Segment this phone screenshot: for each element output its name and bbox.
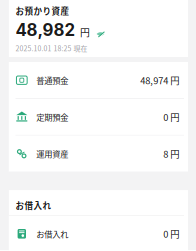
staticText: 0 円 [163, 110, 179, 124]
staticText: お預かり資産 [15, 5, 69, 17]
staticText: 円 [80, 25, 90, 39]
button[interactable]: 運用資産 [9, 136, 188, 172]
staticText: 定期預金 [36, 111, 68, 123]
button[interactable]: 普通預金 [9, 62, 188, 98]
staticText: 運用資産 [36, 148, 68, 160]
staticText: 48,974 円 [140, 73, 179, 87]
staticText: 8 円 [163, 147, 179, 160]
button[interactable]: 残高を隠す [90, 31, 104, 40]
staticText: 2025.10.01 18:25 現在 [15, 43, 87, 53]
staticText: 普通預金 [36, 74, 68, 86]
staticText: お借入れ [15, 199, 51, 211]
button[interactable]: 定期預金 [9, 99, 188, 135]
staticText: 0 円 [163, 227, 179, 240]
staticText: 48,982 [15, 20, 75, 40]
staticText: お借入れ [36, 228, 68, 240]
button[interactable]: お借入れ [9, 216, 188, 251]
